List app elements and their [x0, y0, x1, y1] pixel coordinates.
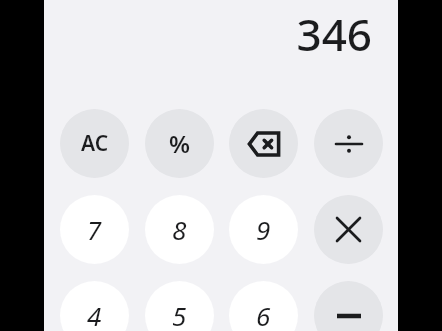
button[interactable]: 5: [145, 281, 214, 331]
button[interactable]: 7: [60, 195, 129, 264]
staticText: AC: [81, 129, 109, 158]
staticText: 9: [256, 212, 271, 247]
button[interactable]: Minus: [314, 281, 383, 331]
staticText: 346: [296, 4, 372, 64]
staticText: %: [169, 127, 190, 160]
staticText: 5: [172, 298, 187, 331]
button[interactable]: Backspace: [229, 109, 298, 178]
button[interactable]: 4: [60, 281, 129, 331]
button[interactable]: 9: [229, 195, 298, 264]
staticText: 4: [87, 298, 102, 331]
button[interactable]: Percent: [145, 109, 214, 178]
staticText: 7: [87, 212, 102, 247]
button[interactable]: AC: [60, 109, 129, 178]
button[interactable]: Multiply: [314, 195, 383, 264]
button[interactable]: 8: [145, 195, 214, 264]
button[interactable]: Divide: [314, 109, 383, 178]
staticText: 8: [172, 212, 187, 247]
button[interactable]: 6: [229, 281, 298, 331]
staticText: 6: [256, 298, 271, 331]
